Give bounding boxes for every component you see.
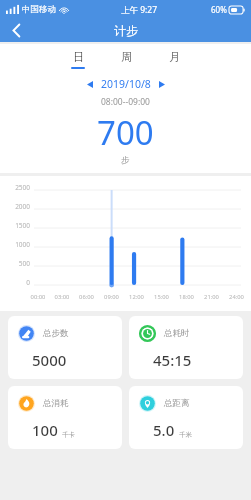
button[interactable]: 总消耗 [8, 386, 122, 449]
staticText: 21:00 [199, 293, 224, 301]
staticText: 03:00 [50, 293, 74, 301]
button[interactable]: 总耗时 [129, 316, 243, 379]
staticText: 中国移动 [22, 4, 56, 15]
staticText: 5000 [32, 350, 67, 370]
button[interactable]: Back [2, 19, 30, 42]
staticText: 周 [121, 50, 132, 64]
staticText: 06:00 [74, 293, 99, 301]
staticText: 2500 [4, 183, 30, 192]
staticText: 18:00 [174, 293, 199, 301]
staticText: 500 [4, 259, 30, 268]
staticText: 总消耗 [43, 398, 69, 409]
button[interactable]: 日 [65, 50, 91, 69]
staticText: 计步 [114, 23, 138, 38]
button[interactable]: 周 [113, 50, 139, 69]
button[interactable]: 总步数 [8, 316, 122, 379]
staticText: 千米 [179, 431, 192, 439]
staticText: 5.0 [153, 420, 175, 440]
button[interactable]: Next day [154, 76, 170, 92]
staticText: 45:15 [153, 350, 192, 370]
staticText: 08:00--09:00 [101, 96, 150, 108]
staticText: 总步数 [43, 328, 69, 339]
staticText: 0 [4, 278, 30, 287]
staticText: 09:00 [99, 293, 124, 301]
staticText: 24:00 [224, 293, 249, 301]
button[interactable]: 总距离 [129, 386, 243, 449]
staticText: 60% [211, 4, 227, 15]
staticText: 总耗时 [164, 328, 190, 339]
staticText: 月 [169, 50, 180, 64]
staticText: 日 [73, 50, 84, 64]
staticText: 1000 [4, 240, 30, 249]
button[interactable]: Previous day [82, 76, 98, 92]
staticText: 2019/10/8 [101, 77, 151, 91]
button[interactable]: 月 [161, 50, 187, 69]
staticText: 00:00 [26, 293, 50, 301]
staticText: 12:00 [124, 293, 149, 301]
staticText: 100 [32, 420, 58, 440]
staticText: 15:00 [149, 293, 174, 301]
staticText: 1500 [4, 221, 30, 230]
staticText: 2000 [4, 202, 30, 211]
staticText: 700 [97, 110, 154, 155]
staticText: 总距离 [164, 398, 190, 409]
staticText: 千卡 [62, 431, 75, 439]
staticText: 步 [121, 155, 130, 166]
staticText: 上午 9:27 [121, 4, 158, 16]
